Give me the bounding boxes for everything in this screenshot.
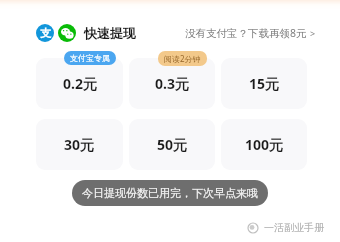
staticText: 快速提现 [84, 25, 136, 41]
button[interactable]: 15元 [221, 58, 307, 109]
button[interactable]: 0.3元 [129, 58, 215, 109]
staticText: 15元 [249, 74, 280, 93]
button[interactable]: 100元 [221, 119, 307, 170]
staticText: 支 [40, 26, 51, 40]
button[interactable]: 30元 [36, 119, 123, 170]
staticText: 100元 [245, 135, 284, 154]
button[interactable]: 50元 [129, 119, 215, 170]
staticText: 阅读2分钟 [164, 53, 201, 64]
button[interactable]: 微信 [58, 24, 76, 42]
button[interactable]: 没有支付宝？下载再领8元 [183, 22, 318, 44]
staticText: 没有支付宝？下载再领8元 [185, 26, 307, 40]
staticText: 0.3元 [155, 74, 189, 93]
staticText: > [310, 27, 316, 39]
staticText: 今日提现份数已用完，下次早点来哦 [82, 186, 258, 200]
staticText: 30元 [64, 135, 95, 154]
button[interactable]: 支付宝 [36, 24, 54, 42]
staticText: 支付宝专属 [70, 53, 110, 63]
staticText: 50元 [157, 135, 188, 154]
staticText: 0.2元 [63, 74, 97, 93]
button[interactable]: 0.2元 [36, 58, 123, 109]
staticText: 一活副业手册 [264, 221, 324, 234]
